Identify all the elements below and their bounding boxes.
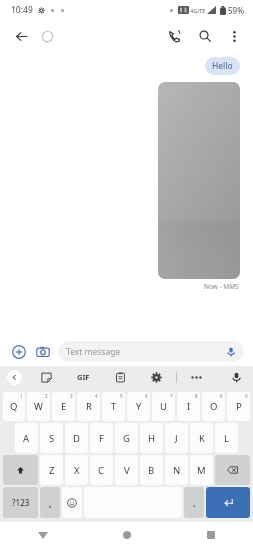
button[interactable]: B [140, 455, 163, 485]
button[interactable]: Comma [40, 487, 60, 518]
staticText: D [73, 432, 80, 445]
staticText: ?123 [12, 497, 30, 508]
staticText: F [99, 432, 104, 445]
staticText: . [193, 497, 196, 509]
staticText: C [98, 464, 105, 477]
staticText: R [86, 400, 92, 413]
button[interactable]: O [202, 392, 225, 421]
button[interactable]: J [165, 423, 188, 453]
staticText: Text message [66, 346, 121, 358]
button[interactable]: Recents [169, 522, 253, 548]
staticText: E [61, 400, 67, 413]
staticText: 1 [20, 393, 23, 399]
button[interactable]: V [115, 455, 138, 485]
staticText: P [236, 400, 242, 413]
button[interactable]: Search [194, 25, 216, 47]
button[interactable]: W [27, 392, 50, 421]
button[interactable]: Hello [205, 57, 240, 75]
button[interactable]: Clipboard [113, 370, 127, 384]
button[interactable]: Q [3, 392, 25, 421]
staticText: T [111, 400, 117, 413]
button[interactable]: Emoji [62, 487, 82, 518]
button[interactable]: Stickers [39, 370, 53, 384]
button[interactable]: Z [40, 455, 63, 485]
button[interactable]: Shift [3, 455, 38, 485]
button[interactable]: Keyboard settings [149, 370, 163, 384]
button[interactable]: X [65, 455, 88, 485]
button[interactable]: Y [127, 392, 150, 421]
button[interactable]: Text message [58, 341, 244, 362]
button[interactable]: Back [0, 522, 85, 548]
button[interactable]: C [90, 455, 113, 485]
button[interactable]: Home [85, 522, 169, 548]
staticText: 9 [220, 393, 223, 399]
button[interactable]: Attach [9, 342, 28, 361]
staticText: 8 [195, 393, 198, 399]
staticText: Z [49, 464, 55, 477]
staticText: N [173, 464, 181, 477]
staticText: 5 [120, 393, 123, 399]
staticText: W [34, 400, 43, 413]
button[interactable]: Back [11, 26, 31, 46]
staticText: Now - MMS [204, 282, 239, 291]
staticText: GIF [77, 372, 90, 382]
staticText: X [74, 464, 80, 477]
staticText: 6 [145, 393, 148, 399]
button[interactable]: Voice typing [229, 370, 244, 385]
button[interactable]: D [65, 423, 88, 453]
button[interactable]: P [227, 392, 250, 421]
staticText: V [124, 464, 130, 477]
button[interactable]: N [165, 455, 188, 485]
button[interactable]: Camera [33, 342, 52, 361]
button[interactable]: S [40, 423, 63, 453]
staticText: J [175, 432, 178, 445]
staticText: 0 [245, 393, 248, 399]
button[interactable]: Call [163, 25, 185, 47]
staticText: 4G/TE [190, 7, 206, 14]
button[interactable]: Period [184, 487, 204, 518]
staticText: H [148, 432, 156, 445]
button[interactable]: R [77, 392, 100, 421]
staticText: U [160, 400, 167, 413]
button[interactable]: Enter [206, 487, 250, 518]
staticText: G [123, 432, 130, 445]
staticText: , [49, 497, 52, 509]
button[interactable]: M [190, 455, 213, 485]
button[interactable]: U [152, 392, 175, 421]
button[interactable]: I [177, 392, 200, 421]
button[interactable]: E [52, 392, 75, 421]
button[interactable]: A [15, 423, 38, 453]
button[interactable]: More [189, 370, 203, 384]
staticText: 59% [228, 5, 244, 16]
staticText: Y [136, 400, 142, 413]
staticText: O [210, 400, 218, 413]
button[interactable]: T [102, 392, 125, 421]
button[interactable]: Collapse toolbar [7, 370, 22, 385]
other: Voice input [224, 345, 238, 359]
button[interactable]: K [190, 423, 213, 453]
staticText: K [199, 432, 205, 445]
staticText: 10:49 [11, 4, 33, 16]
staticText: A [23, 432, 30, 445]
staticText: Hello [212, 60, 233, 72]
button[interactable]: GIF [75, 370, 92, 384]
button[interactable]: F [90, 423, 113, 453]
button[interactable]: H [140, 423, 163, 453]
staticText: L [224, 432, 229, 445]
staticText: B [148, 464, 155, 477]
button[interactable]: G [115, 423, 138, 453]
staticText: M [197, 464, 206, 477]
staticText: 4 [95, 393, 98, 399]
staticText: 3 [70, 393, 73, 399]
button[interactable]: Backspace [215, 455, 250, 485]
staticText: S [49, 432, 55, 445]
button[interactable]: Sent photo [158, 82, 240, 279]
staticText: 7 [170, 393, 173, 399]
button[interactable]: More options [224, 26, 244, 46]
staticText: I [187, 400, 191, 413]
button[interactable]: Contact avatar [37, 26, 57, 46]
button[interactable]: Symbols [3, 487, 38, 518]
staticText: 2 [45, 393, 48, 399]
button[interactable]: L [215, 423, 238, 453]
